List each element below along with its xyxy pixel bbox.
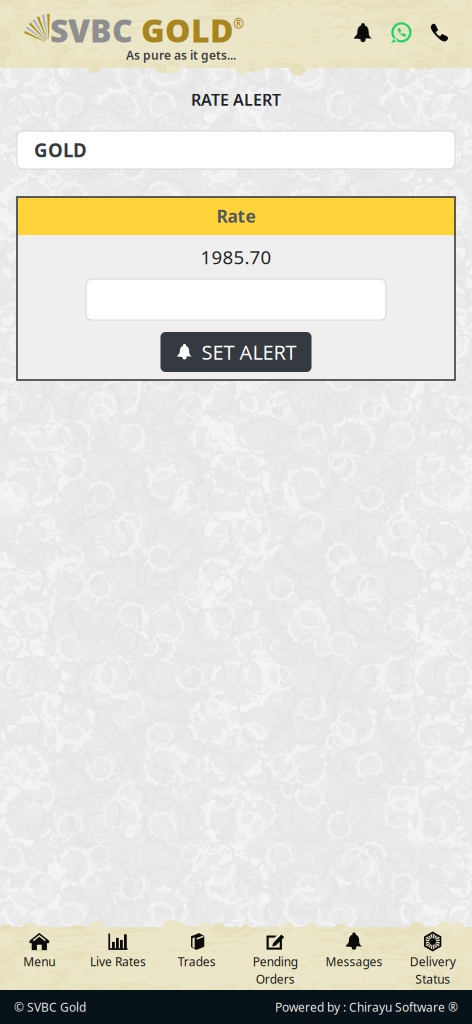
staticText: RATE ALERT — [191, 89, 281, 110]
button[interactable]: Call — [428, 22, 449, 43]
staticText: SVBC — [50, 9, 133, 51]
staticText: © SVBC Gold — [14, 999, 86, 1015]
staticText: As pure as it gets... — [126, 47, 236, 63]
button[interactable]: Delivery — [393, 923, 472, 993]
staticText: Orders — [256, 971, 295, 987]
staticText: Status — [415, 971, 450, 987]
staticText: Menu — [23, 953, 55, 969]
button[interactable]: Pending — [236, 923, 315, 993]
staticText: Trades — [178, 953, 216, 969]
button[interactable]: SET ALERT — [160, 332, 311, 372]
staticText: Delivery — [410, 953, 456, 969]
staticText: Live Rates — [90, 953, 146, 969]
staticText: GOLD — [34, 138, 87, 162]
staticText: Rate — [216, 204, 255, 227]
button[interactable]: Trades — [157, 923, 236, 993]
staticText: ® — [233, 15, 244, 32]
staticText: 1985.70 — [200, 245, 271, 269]
staticText: SET ALERT — [201, 339, 296, 365]
button[interactable]: Notifications — [352, 22, 374, 44]
button[interactable]: WhatsApp — [390, 22, 412, 44]
button[interactable]: Messages — [315, 923, 393, 993]
button[interactable]: Menu — [0, 923, 79, 993]
button[interactable]: Live Rates — [79, 923, 157, 993]
staticText: Messages — [325, 953, 382, 969]
staticText: GOLD — [133, 9, 233, 51]
staticText: Powered by : Chirayu Software ® — [275, 999, 458, 1015]
staticText: Pending — [253, 953, 298, 969]
